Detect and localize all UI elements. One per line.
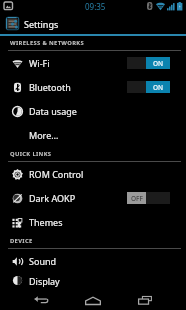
button[interactable]: ROM Control xyxy=(0,162,186,186)
staticText: 09:35 xyxy=(85,1,106,12)
button[interactable]: OFF xyxy=(127,192,170,204)
staticText: Themes xyxy=(29,216,63,228)
button[interactable]: Sound xyxy=(0,249,186,273)
staticText: Settings xyxy=(24,18,59,30)
button[interactable]: Back xyxy=(25,288,55,310)
button[interactable]: More… xyxy=(0,123,186,147)
button[interactable]: Data usage xyxy=(0,99,186,123)
staticText: Sound xyxy=(29,255,57,267)
staticText: ROM Control xyxy=(29,168,84,180)
button[interactable]: Display xyxy=(0,273,186,288)
staticText: Bluetooth xyxy=(29,81,71,93)
staticText: ON xyxy=(153,83,164,92)
button[interactable]: Dark AOKP xyxy=(0,186,186,210)
button[interactable]: Bluetooth xyxy=(0,75,186,99)
staticText: Wi-Fi xyxy=(29,57,50,69)
staticText: DEVICE xyxy=(10,237,33,245)
button[interactable]: Themes xyxy=(0,210,186,234)
staticText: WIRELESS & NETWORKS xyxy=(10,39,85,47)
staticText: More… xyxy=(29,129,59,141)
staticText: ON xyxy=(153,59,164,68)
button[interactable]: Home xyxy=(78,288,108,310)
button[interactable]: Settings xyxy=(0,13,186,34)
staticText: QUICK LINKS xyxy=(10,150,52,158)
staticText: Display xyxy=(29,275,60,287)
button[interactable]: ON xyxy=(127,81,170,93)
button[interactable]: Wi-Fi xyxy=(0,51,186,75)
staticText: Dark AOKP xyxy=(29,192,76,204)
button[interactable]: ON xyxy=(127,57,170,69)
staticText: OFF xyxy=(131,194,143,203)
staticText: Data usage xyxy=(29,105,77,117)
button[interactable]: Recents xyxy=(130,288,160,310)
